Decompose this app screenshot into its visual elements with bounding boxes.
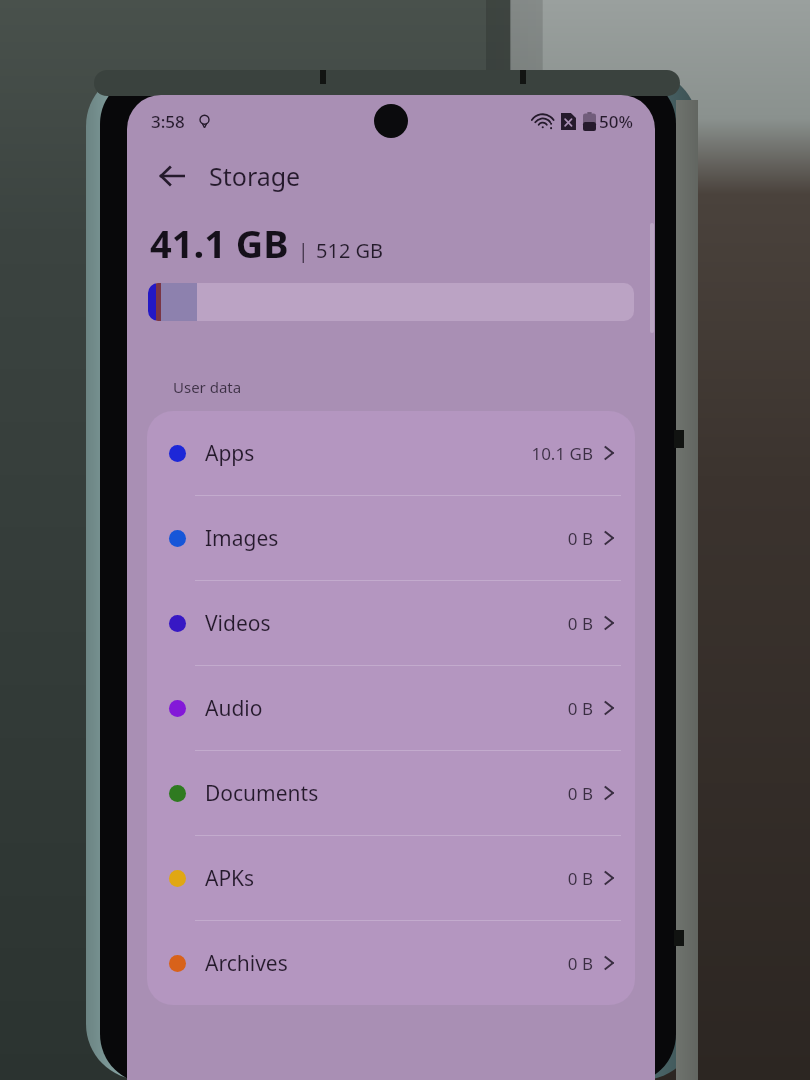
staticText: User data <box>173 377 242 397</box>
staticText: Videos <box>205 609 271 638</box>
staticText: 0 B <box>567 867 593 890</box>
staticText: Audio <box>205 694 263 723</box>
staticText: 0 B <box>567 612 593 635</box>
button[interactable]: APKs <box>147 836 635 920</box>
button[interactable]: Archives <box>147 921 635 1005</box>
button[interactable]: Videos <box>147 581 635 665</box>
staticText: 0 B <box>567 782 593 805</box>
staticText: Archives <box>205 949 288 978</box>
staticText: 50% <box>599 110 633 133</box>
staticText: | <box>298 238 309 264</box>
staticText: 41.1 GB <box>150 217 289 269</box>
staticText: 512 GB <box>316 237 384 264</box>
staticText: 0 B <box>567 527 593 550</box>
staticText: Documents <box>205 779 319 808</box>
button[interactable]: Images <box>147 496 635 580</box>
staticText: 3:58 <box>151 110 185 133</box>
button[interactable]: Documents <box>147 751 635 835</box>
button[interactable]: Back <box>149 153 195 199</box>
staticText: 10.1 GB <box>531 442 593 465</box>
button[interactable]: Apps <box>147 411 635 495</box>
button[interactable]: Audio <box>147 666 635 750</box>
staticText: Storage <box>209 159 301 193</box>
staticText: APKs <box>205 864 255 893</box>
staticText: Images <box>205 524 279 553</box>
staticText: 0 B <box>567 697 593 720</box>
staticText: Apps <box>205 439 255 468</box>
staticText: 0 B <box>567 952 593 975</box>
